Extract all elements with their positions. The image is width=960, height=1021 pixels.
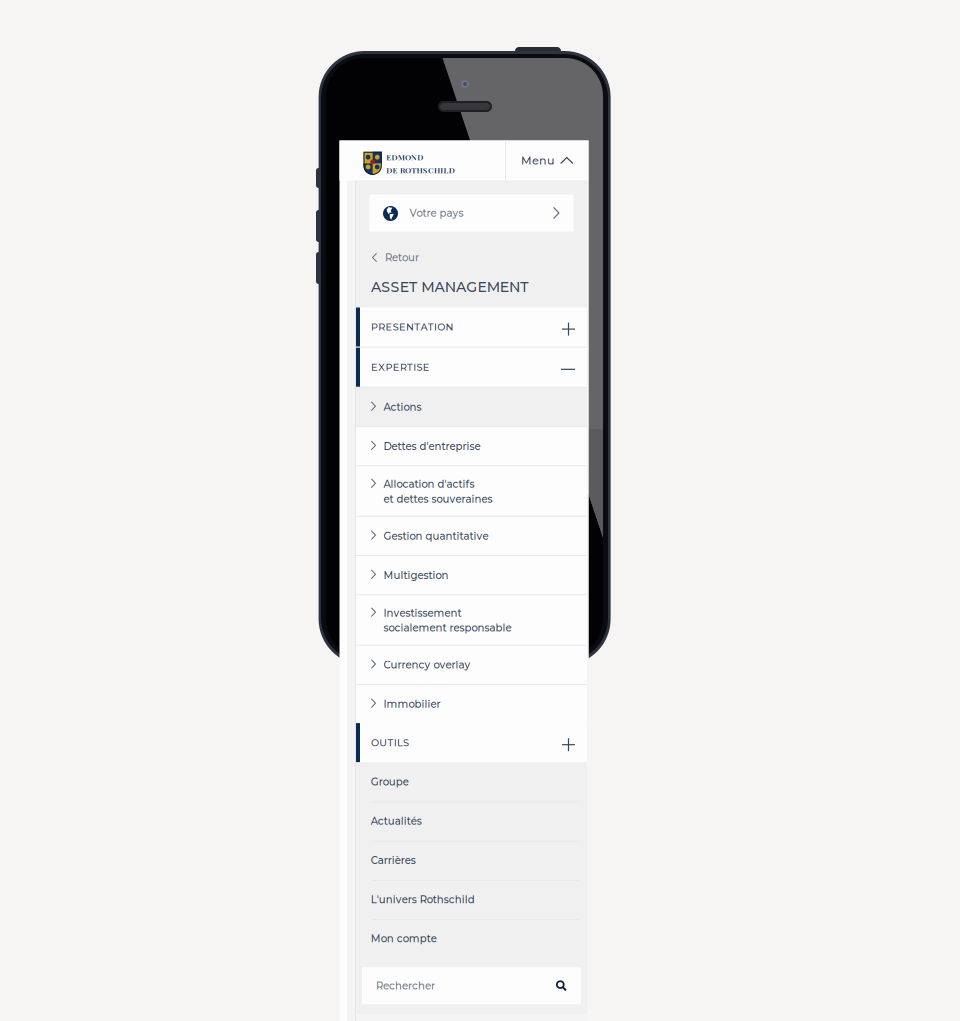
staticText: O bbox=[405, 165, 411, 175]
staticText: T bbox=[414, 321, 420, 333]
staticText: G bbox=[466, 278, 477, 295]
staticText: Immobilier bbox=[383, 698, 440, 710]
staticText: S bbox=[403, 737, 409, 749]
button[interactable]: Rechercher bbox=[362, 967, 581, 1004]
staticText: I bbox=[434, 321, 437, 333]
staticText: E bbox=[477, 278, 486, 295]
staticText: U bbox=[379, 737, 387, 749]
staticText: Actualités bbox=[371, 815, 422, 827]
staticText: Dettes d'entreprise bbox=[383, 440, 480, 453]
button[interactable]: Allocation d'actifs bbox=[356, 465, 587, 516]
staticText: T bbox=[387, 737, 393, 749]
staticText: M bbox=[487, 278, 500, 295]
staticText: R bbox=[378, 321, 385, 333]
staticText: E bbox=[400, 278, 409, 295]
button[interactable]: Votre pays bbox=[369, 194, 573, 231]
staticText: A bbox=[420, 321, 427, 333]
staticText: S bbox=[393, 321, 399, 333]
staticText: E bbox=[423, 361, 430, 373]
staticText: Gestion quantitative bbox=[383, 530, 488, 542]
staticText: T bbox=[428, 321, 434, 333]
button[interactable]: P bbox=[356, 307, 587, 347]
staticText: et dettes souveraines bbox=[383, 493, 492, 505]
staticText: Carrières bbox=[371, 854, 416, 866]
staticText: D bbox=[391, 151, 397, 162]
staticText: D bbox=[449, 165, 455, 175]
staticText: R bbox=[400, 361, 407, 373]
staticText: N bbox=[445, 321, 453, 333]
staticText: T bbox=[520, 278, 528, 295]
staticText: Retour bbox=[385, 251, 419, 264]
staticText: D bbox=[386, 165, 392, 175]
staticText: L bbox=[443, 165, 448, 175]
button[interactable]: Groupe bbox=[356, 762, 587, 801]
staticText: S bbox=[416, 361, 422, 373]
staticText: E bbox=[500, 278, 509, 295]
staticText: T bbox=[407, 361, 413, 373]
button[interactable]: Dettes d'entreprise bbox=[356, 426, 587, 465]
staticText: Investissement bbox=[383, 607, 461, 619]
staticText: N bbox=[509, 278, 520, 295]
staticText: Rechercher bbox=[376, 980, 435, 992]
button[interactable]: E bbox=[356, 348, 587, 387]
staticText: S bbox=[381, 278, 390, 295]
staticText: I bbox=[413, 361, 416, 373]
staticText: N bbox=[445, 278, 456, 295]
staticText: O bbox=[405, 151, 411, 162]
staticText: A bbox=[456, 278, 466, 295]
staticText: Multigestion bbox=[383, 569, 448, 581]
staticText: P bbox=[385, 361, 392, 373]
button[interactable]: Currency overlay bbox=[356, 645, 587, 684]
staticText: Menu bbox=[521, 154, 554, 167]
staticText: P bbox=[371, 321, 378, 333]
staticText: Currency overlay bbox=[383, 659, 470, 671]
staticText: Allocation d'actifs bbox=[383, 478, 474, 490]
staticText: N bbox=[406, 321, 414, 333]
staticText: T bbox=[409, 278, 417, 295]
staticText: D bbox=[417, 151, 423, 162]
staticText: X bbox=[378, 361, 385, 373]
staticText: L'univers Rothschild bbox=[371, 893, 475, 906]
staticText: S bbox=[390, 278, 399, 295]
staticText: R bbox=[400, 165, 405, 175]
button[interactable]: Mon compte bbox=[356, 919, 587, 958]
button[interactable]: Actions bbox=[356, 387, 587, 426]
staticText: C bbox=[428, 165, 434, 175]
staticText: M bbox=[421, 278, 434, 295]
staticText: E bbox=[385, 321, 392, 333]
button[interactable]: Actualités bbox=[356, 801, 587, 841]
button[interactable]: Multigestion bbox=[356, 555, 587, 594]
button[interactable]: Retour bbox=[356, 246, 587, 268]
staticText: Votre pays bbox=[409, 207, 463, 219]
staticText: Actions bbox=[383, 401, 421, 413]
staticText bbox=[417, 278, 421, 295]
staticText: socialement responsable bbox=[383, 622, 511, 634]
staticText: O bbox=[371, 737, 379, 749]
staticText: I bbox=[394, 737, 397, 749]
button[interactable]: O bbox=[356, 723, 587, 762]
staticText: M bbox=[398, 151, 405, 162]
staticText: E bbox=[399, 321, 406, 333]
staticText: L bbox=[397, 737, 403, 749]
staticText: Groupe bbox=[371, 776, 409, 788]
staticText: A bbox=[434, 278, 444, 295]
button[interactable]: Gestion quantitative bbox=[356, 516, 587, 555]
staticText: H bbox=[416, 165, 422, 175]
staticText: E bbox=[392, 165, 397, 175]
staticText: T bbox=[411, 165, 416, 175]
button[interactable]: Immobilier bbox=[356, 684, 587, 723]
staticText: O bbox=[437, 321, 445, 333]
button[interactable]: Investissement bbox=[356, 594, 587, 645]
button[interactable]: Menu bbox=[506, 140, 588, 180]
staticText: N bbox=[411, 151, 417, 162]
staticText: E bbox=[393, 361, 400, 373]
button[interactable]: L'univers Rothschild bbox=[356, 880, 587, 919]
staticText: E bbox=[386, 151, 391, 162]
staticText: S bbox=[423, 165, 428, 175]
staticText: I bbox=[440, 165, 443, 175]
staticText: E bbox=[371, 361, 378, 373]
staticText: H bbox=[434, 165, 440, 175]
button[interactable]: Carrières bbox=[356, 841, 587, 880]
staticText: A bbox=[371, 278, 381, 295]
